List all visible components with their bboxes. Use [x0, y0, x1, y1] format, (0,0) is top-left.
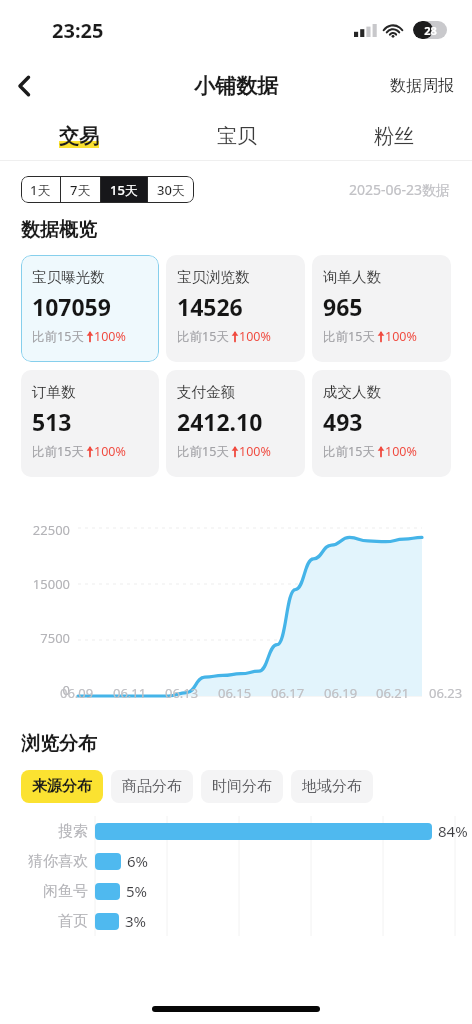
staticText: 28 [424, 23, 437, 38]
staticText: 比前15天 [177, 328, 229, 345]
button[interactable]: 粉丝 [315, 112, 472, 160]
button[interactable]: 时间分布 [201, 770, 283, 803]
staticText: 30天 [157, 181, 185, 199]
staticText: 比前15天 [32, 328, 84, 345]
staticText: 06.15 [218, 684, 252, 702]
staticText: 965 [323, 291, 363, 322]
button[interactable]: Back [0, 61, 50, 111]
staticText: 搜索 [0, 822, 88, 841]
staticText: 支付金额 [177, 383, 235, 401]
button[interactable]: 宝贝 [158, 112, 315, 160]
staticText: 100% [385, 328, 417, 345]
staticText: 2025-06-23数据 [349, 180, 451, 199]
button[interactable]: 数据周报 [384, 69, 460, 103]
staticText: 猜你喜欢 [0, 852, 88, 871]
staticText: 15天 [110, 181, 138, 199]
staticText: 513 [32, 406, 72, 437]
staticText: 7500 [0, 629, 70, 647]
staticText: 闲鱼号 [0, 882, 88, 901]
staticText: 14526 [177, 291, 243, 322]
button[interactable]: 支付金额 [166, 370, 305, 477]
staticText: 493 [323, 406, 363, 437]
staticText: 06.09 [60, 684, 94, 702]
staticText: 浏览分布 [21, 732, 97, 756]
staticText: 商品分布 [122, 777, 182, 796]
staticText: 0 [0, 681, 70, 699]
staticText: 06.23 [429, 684, 463, 702]
staticText: 交易 [59, 124, 99, 149]
button[interactable]: 宝贝曝光数 [21, 255, 159, 362]
staticText: 15000 [0, 575, 70, 593]
staticText: 06.21 [376, 684, 410, 702]
staticText: 粉丝 [374, 124, 414, 149]
staticText: 地域分布 [302, 777, 362, 796]
staticText: 100% [385, 443, 417, 460]
staticText: 首页 [0, 912, 88, 931]
button[interactable]: 成交人数 [312, 370, 451, 477]
staticText: 84% [438, 821, 468, 841]
staticText: 询单人数 [323, 268, 381, 286]
staticText: 宝贝曝光数 [32, 268, 105, 286]
staticText: 3% [125, 911, 147, 931]
staticText: 数据概览 [21, 218, 97, 242]
button[interactable]: 询单人数 [312, 255, 451, 362]
staticText: 22500 [0, 521, 70, 539]
button[interactable]: 宝贝浏览数 [166, 255, 305, 362]
staticText: 订单数 [32, 383, 76, 401]
staticText: 比前15天 [323, 443, 375, 460]
button[interactable]: 订单数 [21, 370, 159, 477]
button[interactable]: 交易 [0, 112, 158, 160]
button[interactable]: 地域分布 [291, 770, 373, 803]
button[interactable]: 30天 [148, 176, 194, 203]
staticText: 06.13 [165, 684, 199, 702]
staticText: 6% [127, 851, 149, 871]
button[interactable]: 来源分布 [21, 770, 103, 803]
button[interactable]: 7天 [61, 176, 100, 203]
staticText: 比前15天 [177, 443, 229, 460]
button[interactable]: 1天 [21, 176, 60, 203]
staticText: 100% [239, 328, 271, 345]
staticText: 06.17 [271, 684, 305, 702]
button[interactable]: 15天 [101, 176, 147, 203]
staticText: 5% [126, 881, 148, 901]
staticText: 100% [94, 443, 126, 460]
staticText: 06.11 [113, 684, 147, 702]
staticText: 06.19 [324, 684, 358, 702]
staticText: 时间分布 [212, 777, 272, 796]
staticText: 小铺数据 [194, 73, 278, 99]
staticText: 比前15天 [323, 328, 375, 345]
staticText: 107059 [32, 291, 111, 322]
staticText: 100% [94, 328, 126, 345]
staticText: 2412.10 [177, 406, 263, 437]
staticText: 比前15天 [32, 443, 84, 460]
staticText: 宝贝 [217, 124, 257, 149]
staticText: 数据周报 [390, 76, 454, 96]
staticText: 成交人数 [323, 383, 381, 401]
staticText: 100% [239, 443, 271, 460]
staticText: 来源分布 [32, 777, 92, 796]
staticText: 7天 [70, 181, 91, 199]
staticText: 1天 [30, 181, 51, 199]
button[interactable]: 商品分布 [111, 770, 193, 803]
staticText: 宝贝浏览数 [177, 268, 250, 286]
staticText: 23:25 [52, 17, 104, 44]
